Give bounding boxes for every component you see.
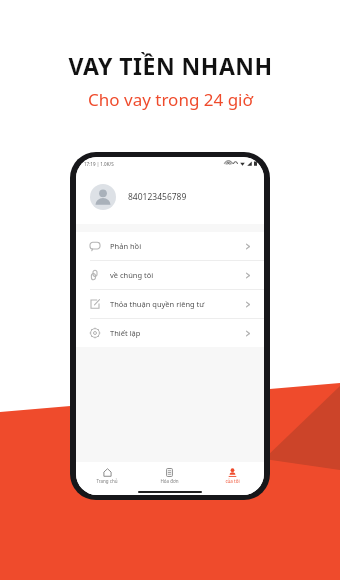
- staticText: 17:19 | 1.0K/S: [84, 161, 114, 167]
- button[interactable]: Trang chủ: [76, 466, 138, 486]
- staticText: Hóa đơn: [160, 478, 179, 484]
- button[interactable]: của tôi: [201, 466, 264, 486]
- button[interactable]: Thỏa thuận quyền riêng tư: [76, 290, 264, 318]
- staticText: Thiết lập: [110, 328, 141, 338]
- staticText: Cho vay trong 24 giờ: [88, 88, 253, 111]
- staticText: Trang chủ: [96, 478, 118, 484]
- other: Trang chủ: [103, 468, 112, 477]
- button[interactable]: Hóa đơn: [138, 466, 201, 486]
- staticText: Thỏa thuận quyền riêng tư: [110, 299, 205, 309]
- other: Hóa đơn: [165, 468, 174, 477]
- button[interactable]: 840123456789: [76, 170, 264, 224]
- staticText: của tôi: [225, 478, 240, 484]
- staticText: 840123456789: [128, 191, 187, 203]
- other: của tôi: [228, 468, 237, 477]
- button[interactable]: về chúng tôi: [76, 261, 264, 289]
- button[interactable]: Thiết lập: [76, 319, 264, 347]
- staticText: về chúng tôi: [110, 270, 154, 280]
- button[interactable]: Phản hồi: [76, 232, 264, 260]
- staticText: VAY TIỀN NHANH: [68, 50, 273, 81]
- staticText: Phản hồi: [110, 241, 142, 251]
